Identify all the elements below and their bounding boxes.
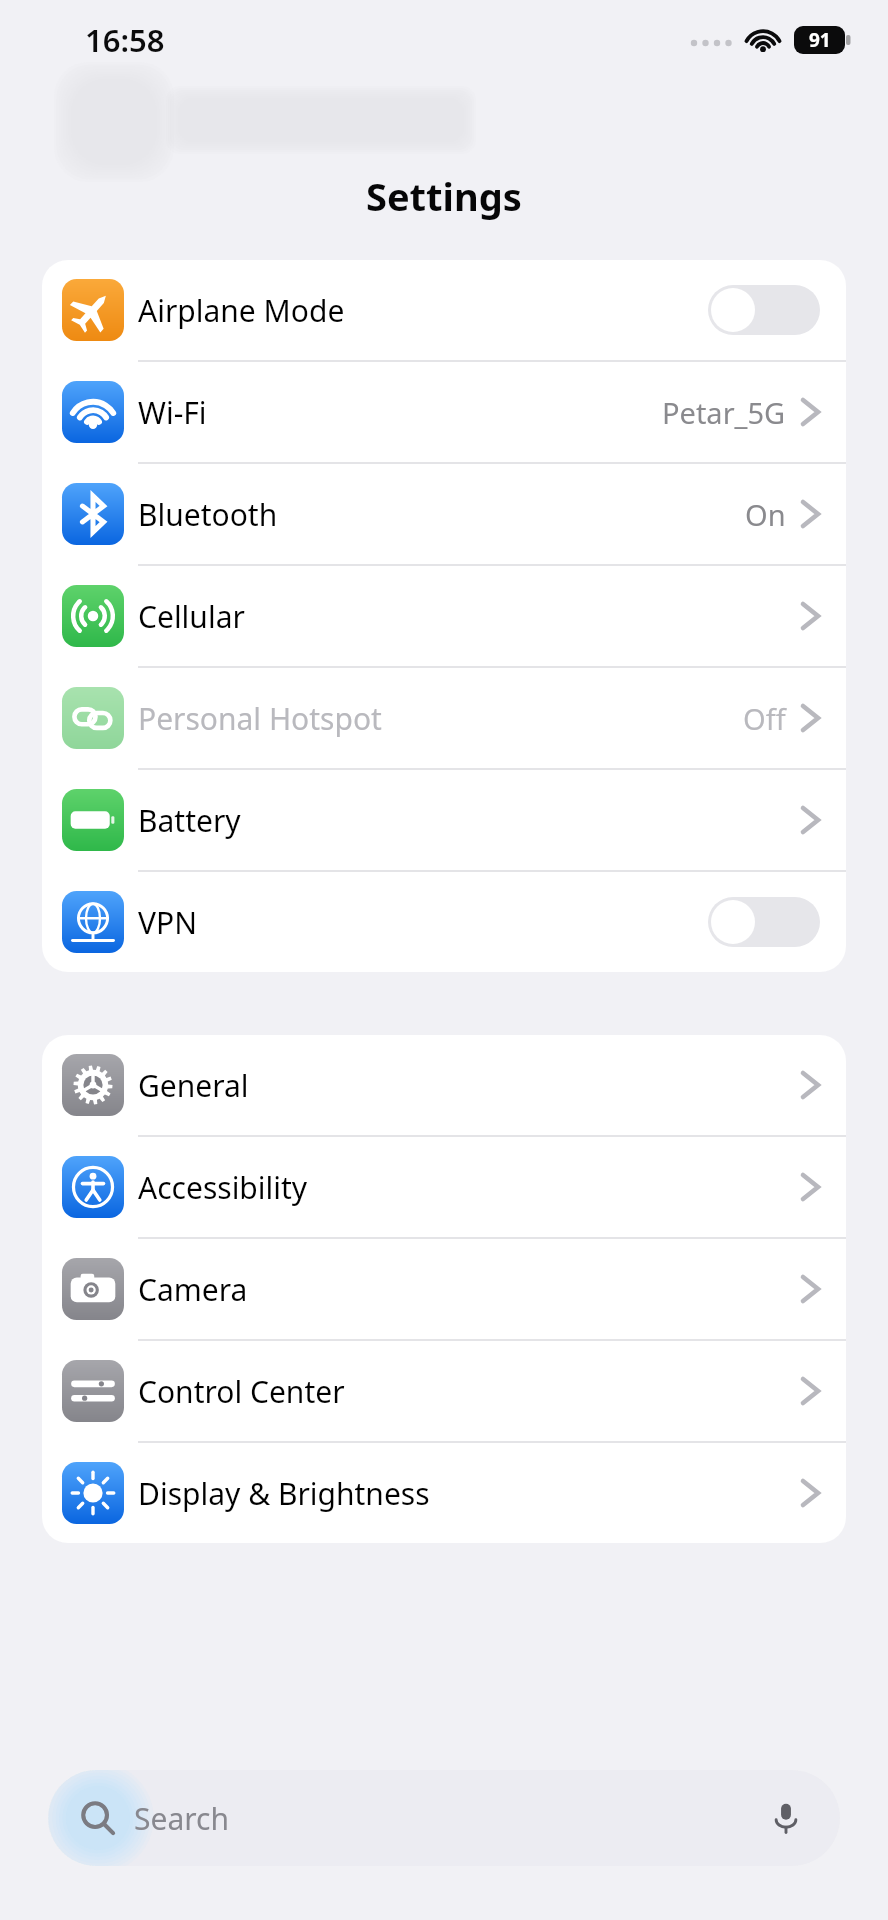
button[interactable]: Personal Hotspot — [42, 668, 846, 768]
staticText: 91 — [809, 27, 831, 53]
staticText: Accessibility — [138, 1167, 802, 1208]
staticText: On — [745, 495, 786, 534]
button[interactable]: VPN — [42, 872, 846, 972]
staticText: Bluetooth — [138, 494, 745, 535]
button[interactable]: General — [42, 1035, 846, 1135]
staticText: Search — [134, 1798, 764, 1839]
staticText: General — [138, 1065, 802, 1106]
button[interactable]: Airplane Mode — [42, 260, 846, 360]
button[interactable]: Display & Brightness — [42, 1443, 846, 1543]
staticText: Off — [743, 699, 786, 738]
button[interactable]: Accessibility — [42, 1137, 846, 1237]
staticText: Personal Hotspot — [138, 698, 743, 739]
staticText: Control Center — [138, 1371, 802, 1412]
staticText: Petar_5G — [662, 393, 786, 432]
staticText: 16:58 — [85, 19, 165, 61]
button[interactable]: Control Center — [42, 1341, 846, 1441]
staticText: Battery — [138, 800, 802, 841]
button[interactable]: Wi-Fi — [42, 362, 846, 462]
button[interactable]: Cellular — [42, 566, 846, 666]
button[interactable]: Battery — [42, 770, 846, 870]
button[interactable]: Camera — [42, 1239, 846, 1339]
button[interactable]: Airplane Mode toggle — [708, 285, 820, 335]
staticText: VPN — [138, 902, 708, 943]
staticText: Cellular — [138, 596, 802, 637]
button[interactable]: Search — [48, 1770, 840, 1866]
button[interactable]: VPN toggle — [708, 897, 820, 947]
button[interactable]: Voice search — [764, 1796, 808, 1840]
staticText: Settings — [366, 170, 522, 222]
staticText: Airplane Mode — [138, 290, 708, 331]
button[interactable]: Bluetooth — [42, 464, 846, 564]
staticText: Wi-Fi — [138, 392, 662, 433]
staticText: Display & Brightness — [138, 1473, 802, 1514]
staticText: Camera — [138, 1269, 802, 1310]
